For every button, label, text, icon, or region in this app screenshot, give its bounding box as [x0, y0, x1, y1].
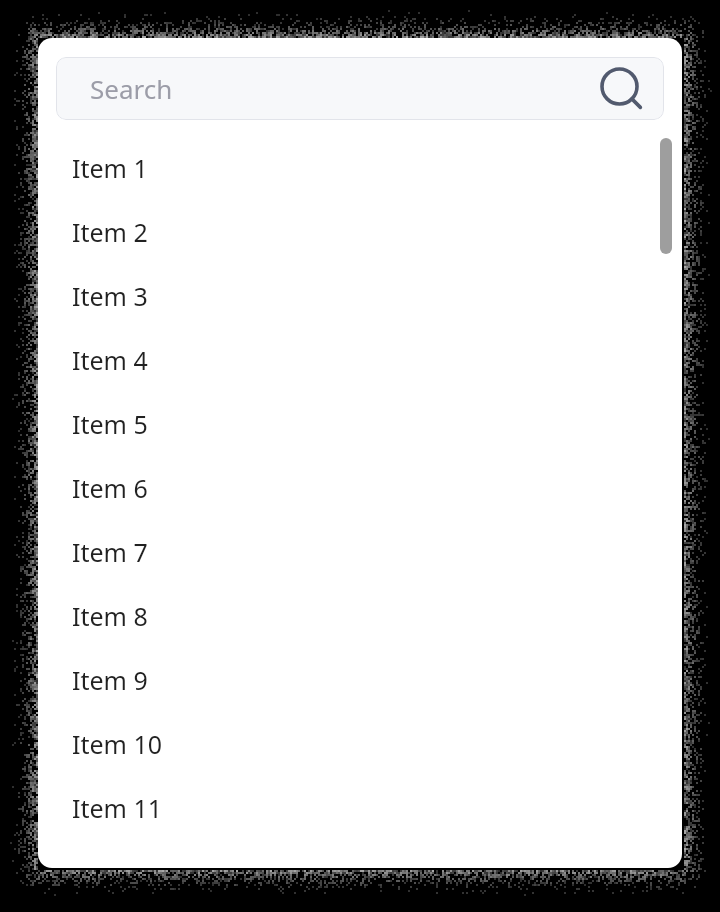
button[interactable]: Item 7	[38, 520, 682, 584]
button[interactable]: Item 11	[38, 776, 682, 840]
staticText: Item 9	[72, 663, 148, 697]
button[interactable]: Item 3	[38, 264, 682, 328]
button[interactable]: Item 4	[38, 328, 682, 392]
staticText: Item 6	[72, 471, 148, 505]
button[interactable]: Item 9	[38, 648, 682, 712]
button[interactable]: Item 5	[38, 392, 682, 456]
button[interactable]: Item 2	[38, 200, 682, 264]
button[interactable]: Item 8	[38, 584, 682, 648]
button[interactable]: Item 10	[38, 712, 682, 776]
staticText: Item 4	[72, 343, 148, 377]
button[interactable]: Search	[600, 67, 644, 111]
staticText: Item 7	[72, 535, 148, 569]
staticText: Item 8	[72, 599, 148, 633]
staticText: Item 3	[72, 279, 148, 313]
staticText: Item 5	[72, 407, 148, 441]
staticText: Search	[90, 71, 600, 106]
button[interactable]: Item 6	[38, 456, 682, 520]
button[interactable]: Search	[56, 57, 664, 120]
staticText: Item 10	[72, 727, 163, 761]
staticText: Item 2	[72, 215, 148, 249]
button[interactable]: Item 1	[38, 136, 682, 200]
staticText: Item 11	[72, 791, 163, 825]
staticText: Item 1	[72, 151, 148, 185]
